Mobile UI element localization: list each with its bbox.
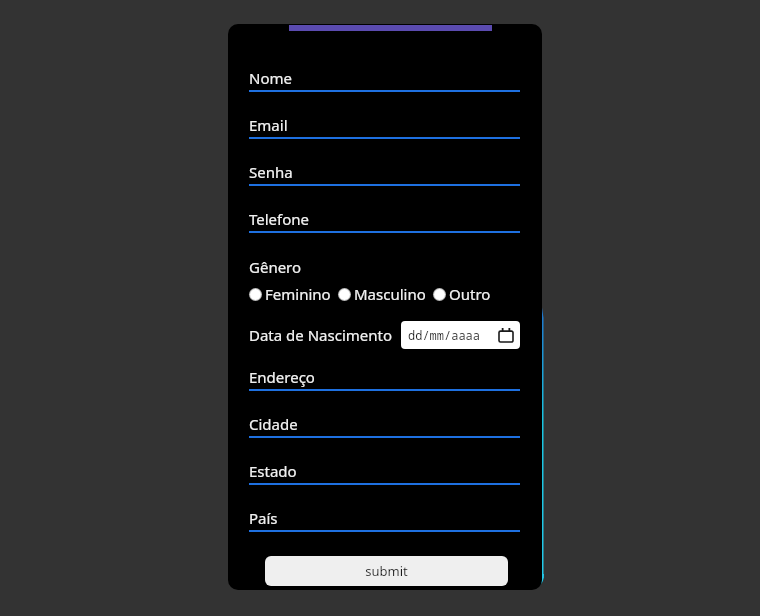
button[interactable]: Telefone [249, 209, 520, 233]
button[interactable]: País [249, 508, 520, 532]
staticText: Gênero [249, 257, 302, 277]
button[interactable]: Email [249, 115, 520, 139]
button[interactable]: Outro [433, 284, 491, 304]
button[interactable]: Open calendar [499, 328, 513, 342]
staticText: Email [249, 115, 288, 135]
button[interactable]: Feminino [249, 284, 331, 304]
button[interactable]: Masculino [338, 284, 426, 304]
staticText: Estado [249, 461, 297, 481]
staticText: dd/mm/aaaa [408, 327, 481, 343]
button[interactable]: dd/mm/aaaa [401, 321, 520, 349]
button[interactable]: Nome [249, 68, 520, 92]
button[interactable]: Senha [249, 162, 520, 186]
staticText: Feminino [265, 284, 331, 304]
button[interactable]: submit [265, 556, 508, 586]
staticText: Nome [249, 68, 292, 88]
staticText: Telefone [249, 209, 310, 229]
staticText: submit [365, 562, 408, 580]
staticText: Cidade [249, 414, 298, 434]
staticText: Senha [249, 162, 293, 182]
staticText: Outro [449, 284, 491, 304]
staticText: Masculino [354, 284, 426, 304]
button[interactable]: Cidade [249, 414, 520, 438]
staticText: Data de Nascimento [249, 325, 392, 345]
button[interactable]: Estado [249, 461, 520, 485]
button[interactable]: Endereço [249, 367, 520, 391]
staticText: País [249, 508, 278, 528]
staticText: Endereço [249, 367, 315, 387]
